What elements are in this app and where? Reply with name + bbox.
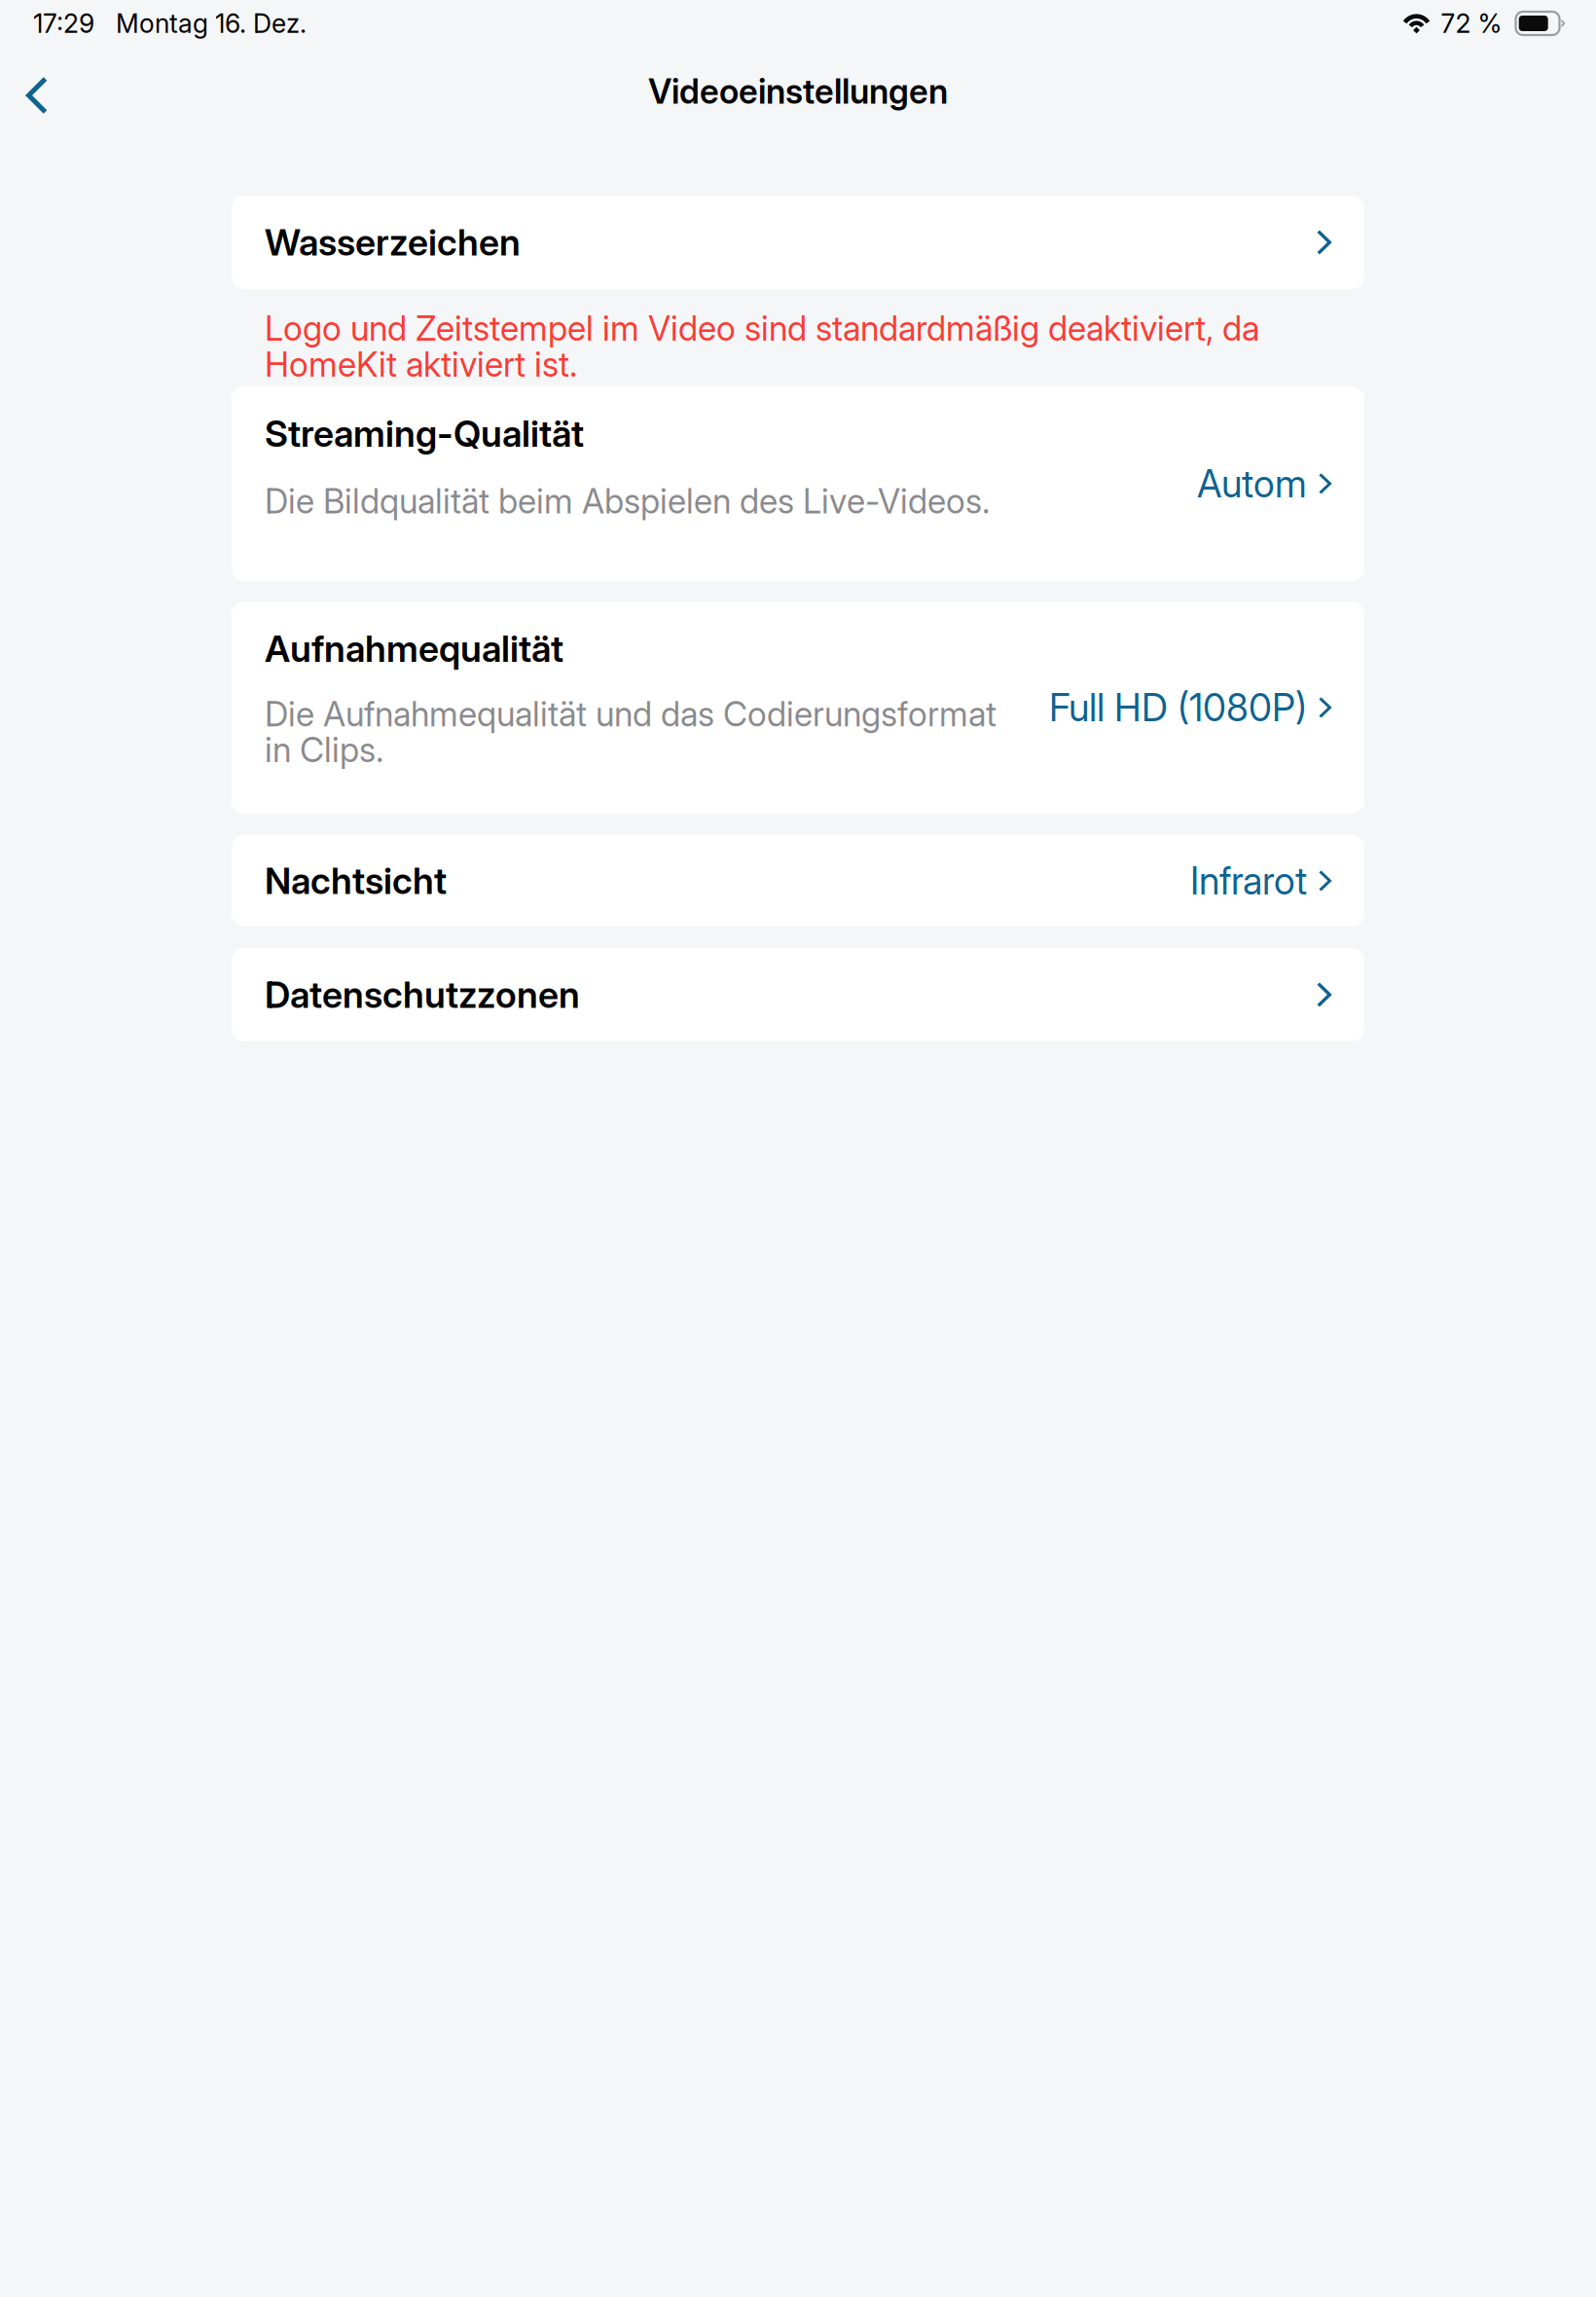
staticText: Wasserzeichen [265,220,521,264]
staticText: Datenschutzzonen [265,973,580,1017]
button[interactable]: Streaming-Qualität [232,386,1364,581]
staticText: Full HD (1080P) [1049,685,1307,730]
staticText: Logo und Zeitstempel im Video sind stand… [265,310,1259,382]
staticText: Nachtsicht [265,859,447,903]
staticText: 17:29 [33,8,94,39]
button[interactable]: Wasserzeichen [232,196,1364,289]
button[interactable]: Nachtsicht [232,835,1364,926]
staticText: Infrarot [1190,858,1307,904]
staticText: Streaming-Qualität [265,412,584,456]
button[interactable]: Aufnahmequalität [232,601,1364,814]
staticText: 72 % [1441,8,1502,39]
staticText: Montag 16. Dez. [116,8,307,39]
button[interactable]: Datenschutzzonen [232,948,1364,1041]
staticText: Videoeinstellungen [648,71,948,112]
staticText: Die Aufnahmequalität und das Codierungsf… [265,696,997,768]
staticText: Die Bildqualität beim Abspielen des Live… [265,481,990,522]
staticText: Aufnahmequalität [265,627,563,671]
button[interactable]: Back [0,59,71,124]
staticText: Autom [1197,461,1307,506]
